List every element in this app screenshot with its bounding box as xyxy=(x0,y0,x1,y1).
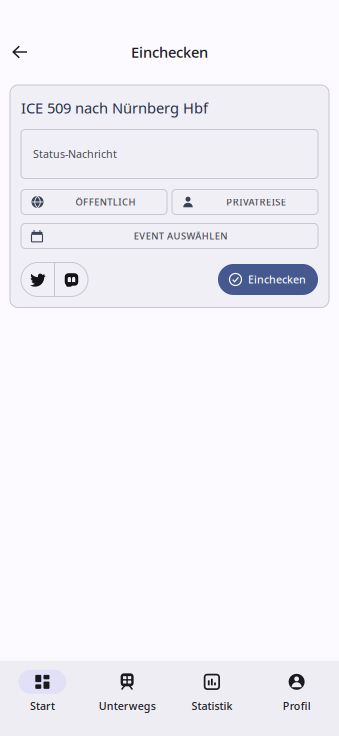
staticText: Einchecken xyxy=(131,42,208,62)
button[interactable]: Einchecken xyxy=(218,264,318,295)
staticText: PRIVATREISE xyxy=(226,196,286,208)
button[interactable]: Start xyxy=(0,670,85,713)
staticText: EVENT AUSWÄHLEN xyxy=(134,230,227,242)
button[interactable]: PRIVATREISE xyxy=(172,189,318,214)
button[interactable]: ÖFFENTLICH xyxy=(21,189,167,214)
button[interactable]: Back xyxy=(0,32,40,72)
button[interactable]: Unterwegs xyxy=(85,670,170,713)
staticText: Unterwegs xyxy=(99,699,156,713)
button[interactable]: Statistik xyxy=(169,670,254,713)
staticText: ICE 509 nach Nürnberg Hbf xyxy=(21,98,208,117)
staticText: ÖFFENTLICH xyxy=(75,196,135,208)
staticText: Statistik xyxy=(191,699,232,713)
button[interactable]: EVENT AUSWÄHLEN xyxy=(21,223,318,248)
staticText: Profil xyxy=(283,699,311,713)
button[interactable]: Twitter xyxy=(21,262,54,296)
button[interactable]: Mastodon xyxy=(55,262,88,296)
staticText: Status-Nachricht xyxy=(33,147,117,161)
staticText: Einchecken xyxy=(248,272,306,287)
staticText: Start xyxy=(30,699,55,713)
button[interactable]: Profil xyxy=(254,670,339,713)
